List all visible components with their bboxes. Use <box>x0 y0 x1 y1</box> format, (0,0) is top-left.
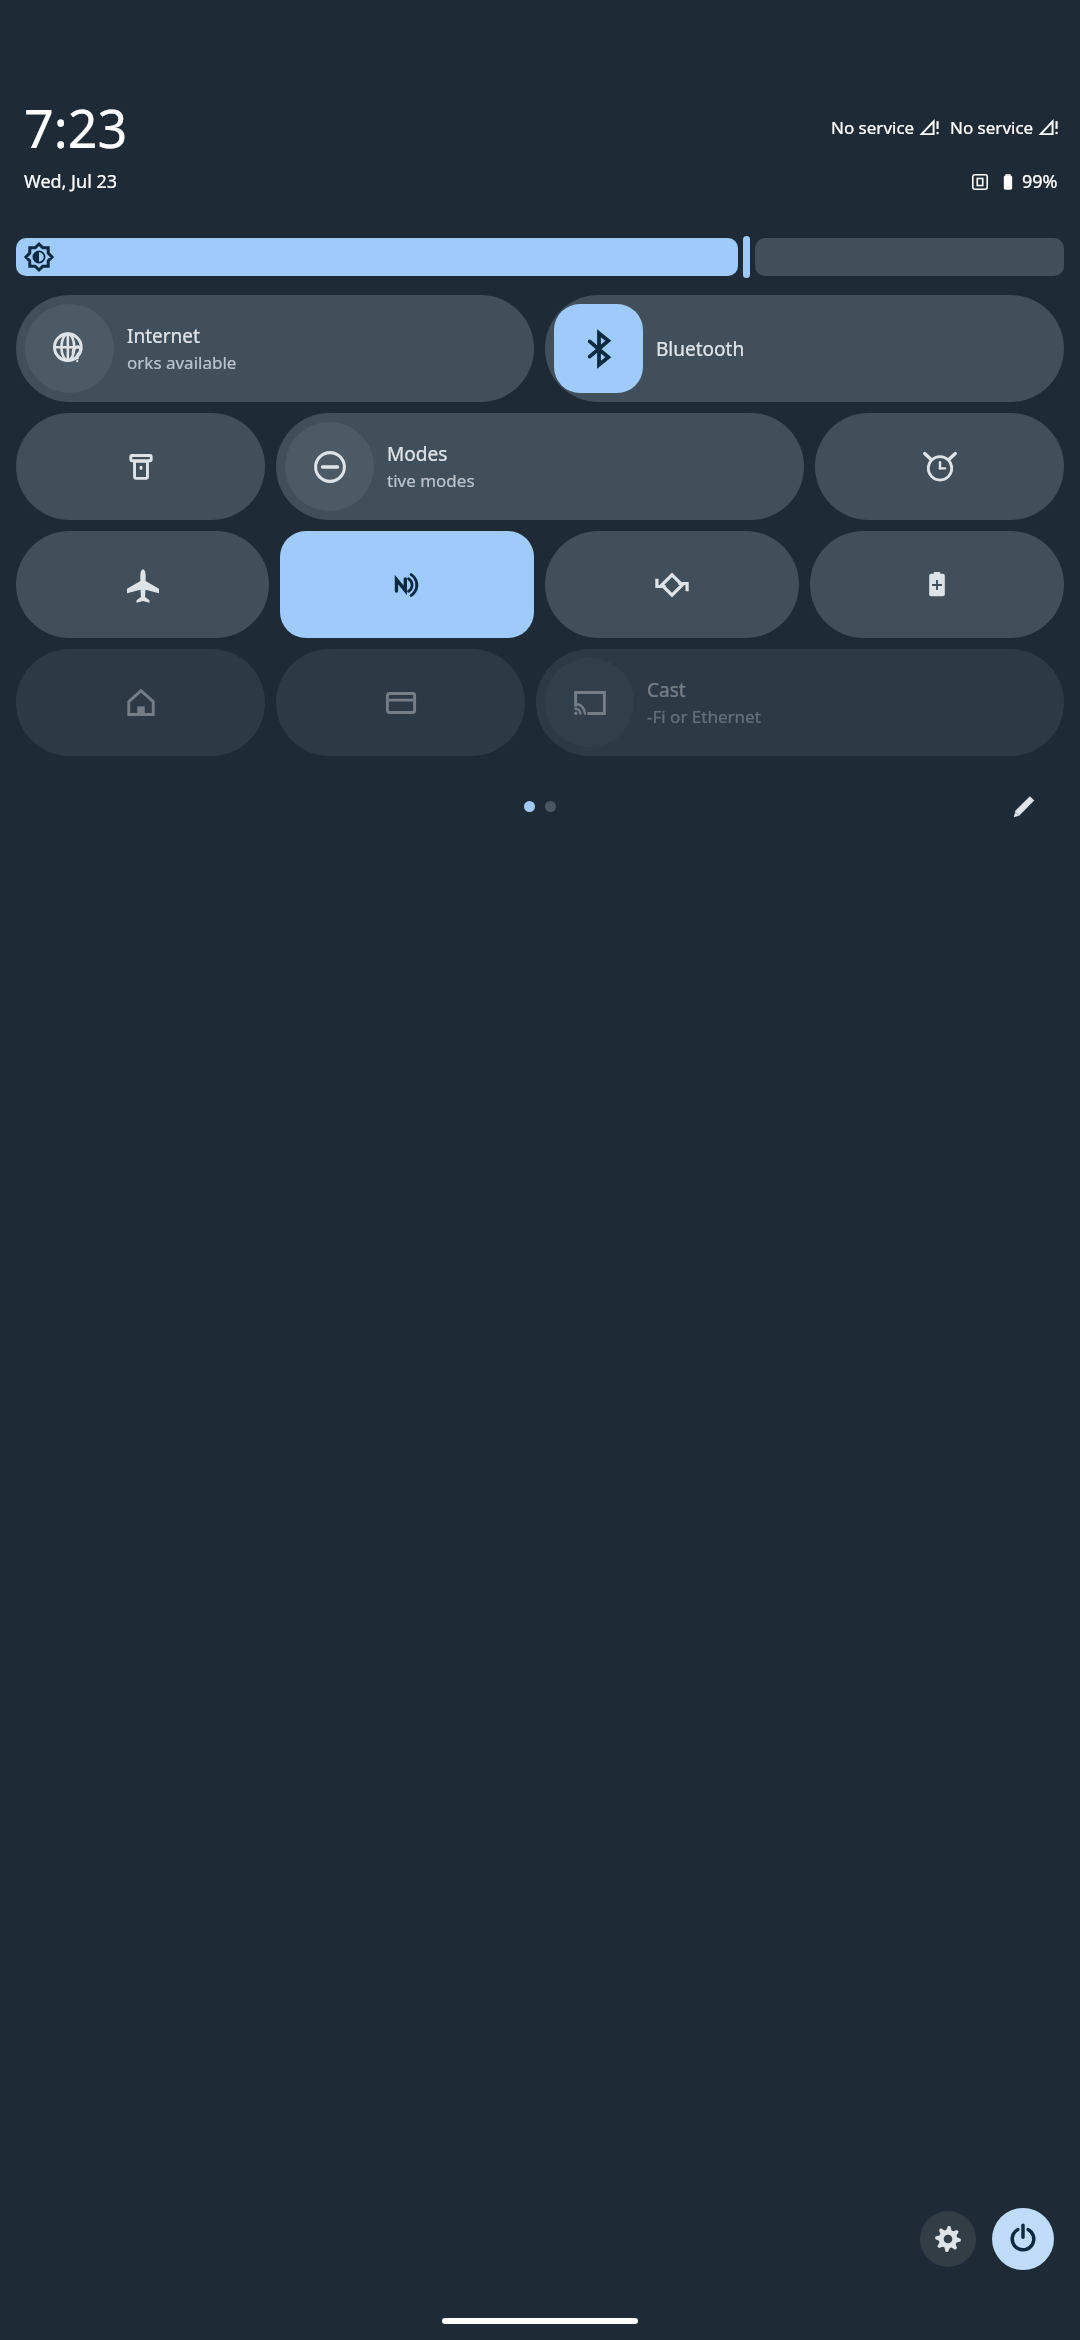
staticText: Internet <box>127 323 200 349</box>
staticText: -Fi or Ethernet <box>647 705 761 728</box>
staticText: Cast <box>647 677 686 703</box>
button[interactable]: NFC <box>280 531 534 638</box>
staticText: No service <box>831 116 915 139</box>
button[interactable]: Auto rotate <box>545 531 799 638</box>
staticText: No service <box>950 116 1034 139</box>
button[interactable]: Flashlight <box>16 413 265 520</box>
staticText: tive modes <box>387 469 475 492</box>
staticText: Modes <box>387 441 448 467</box>
staticText: orks available <box>127 351 237 374</box>
button[interactable]: Power <box>992 2208 1054 2270</box>
button[interactable]: Edit tiles <box>1002 784 1046 828</box>
button[interactable]: Airplane mode <box>16 531 269 638</box>
button[interactable]: Wallet <box>276 649 525 756</box>
button[interactable]: Internet <box>16 295 534 402</box>
button[interactable]: Brightness <box>16 238 738 276</box>
button[interactable]: Cast <box>536 649 1064 756</box>
button[interactable]: Home <box>16 649 265 756</box>
staticText: Wed, Jul 23 <box>24 169 118 194</box>
staticText: 99% <box>1022 169 1058 194</box>
button[interactable]: Alarm <box>815 413 1064 520</box>
button[interactable] <box>755 238 1064 276</box>
staticText: Bluetooth <box>656 336 745 362</box>
button[interactable]: Bluetooth <box>545 295 1064 402</box>
staticText: 7:23 <box>24 92 128 163</box>
button[interactable]: Battery saver <box>810 531 1064 638</box>
button[interactable]: Settings <box>920 2211 976 2267</box>
button[interactable]: Modes <box>276 413 804 520</box>
